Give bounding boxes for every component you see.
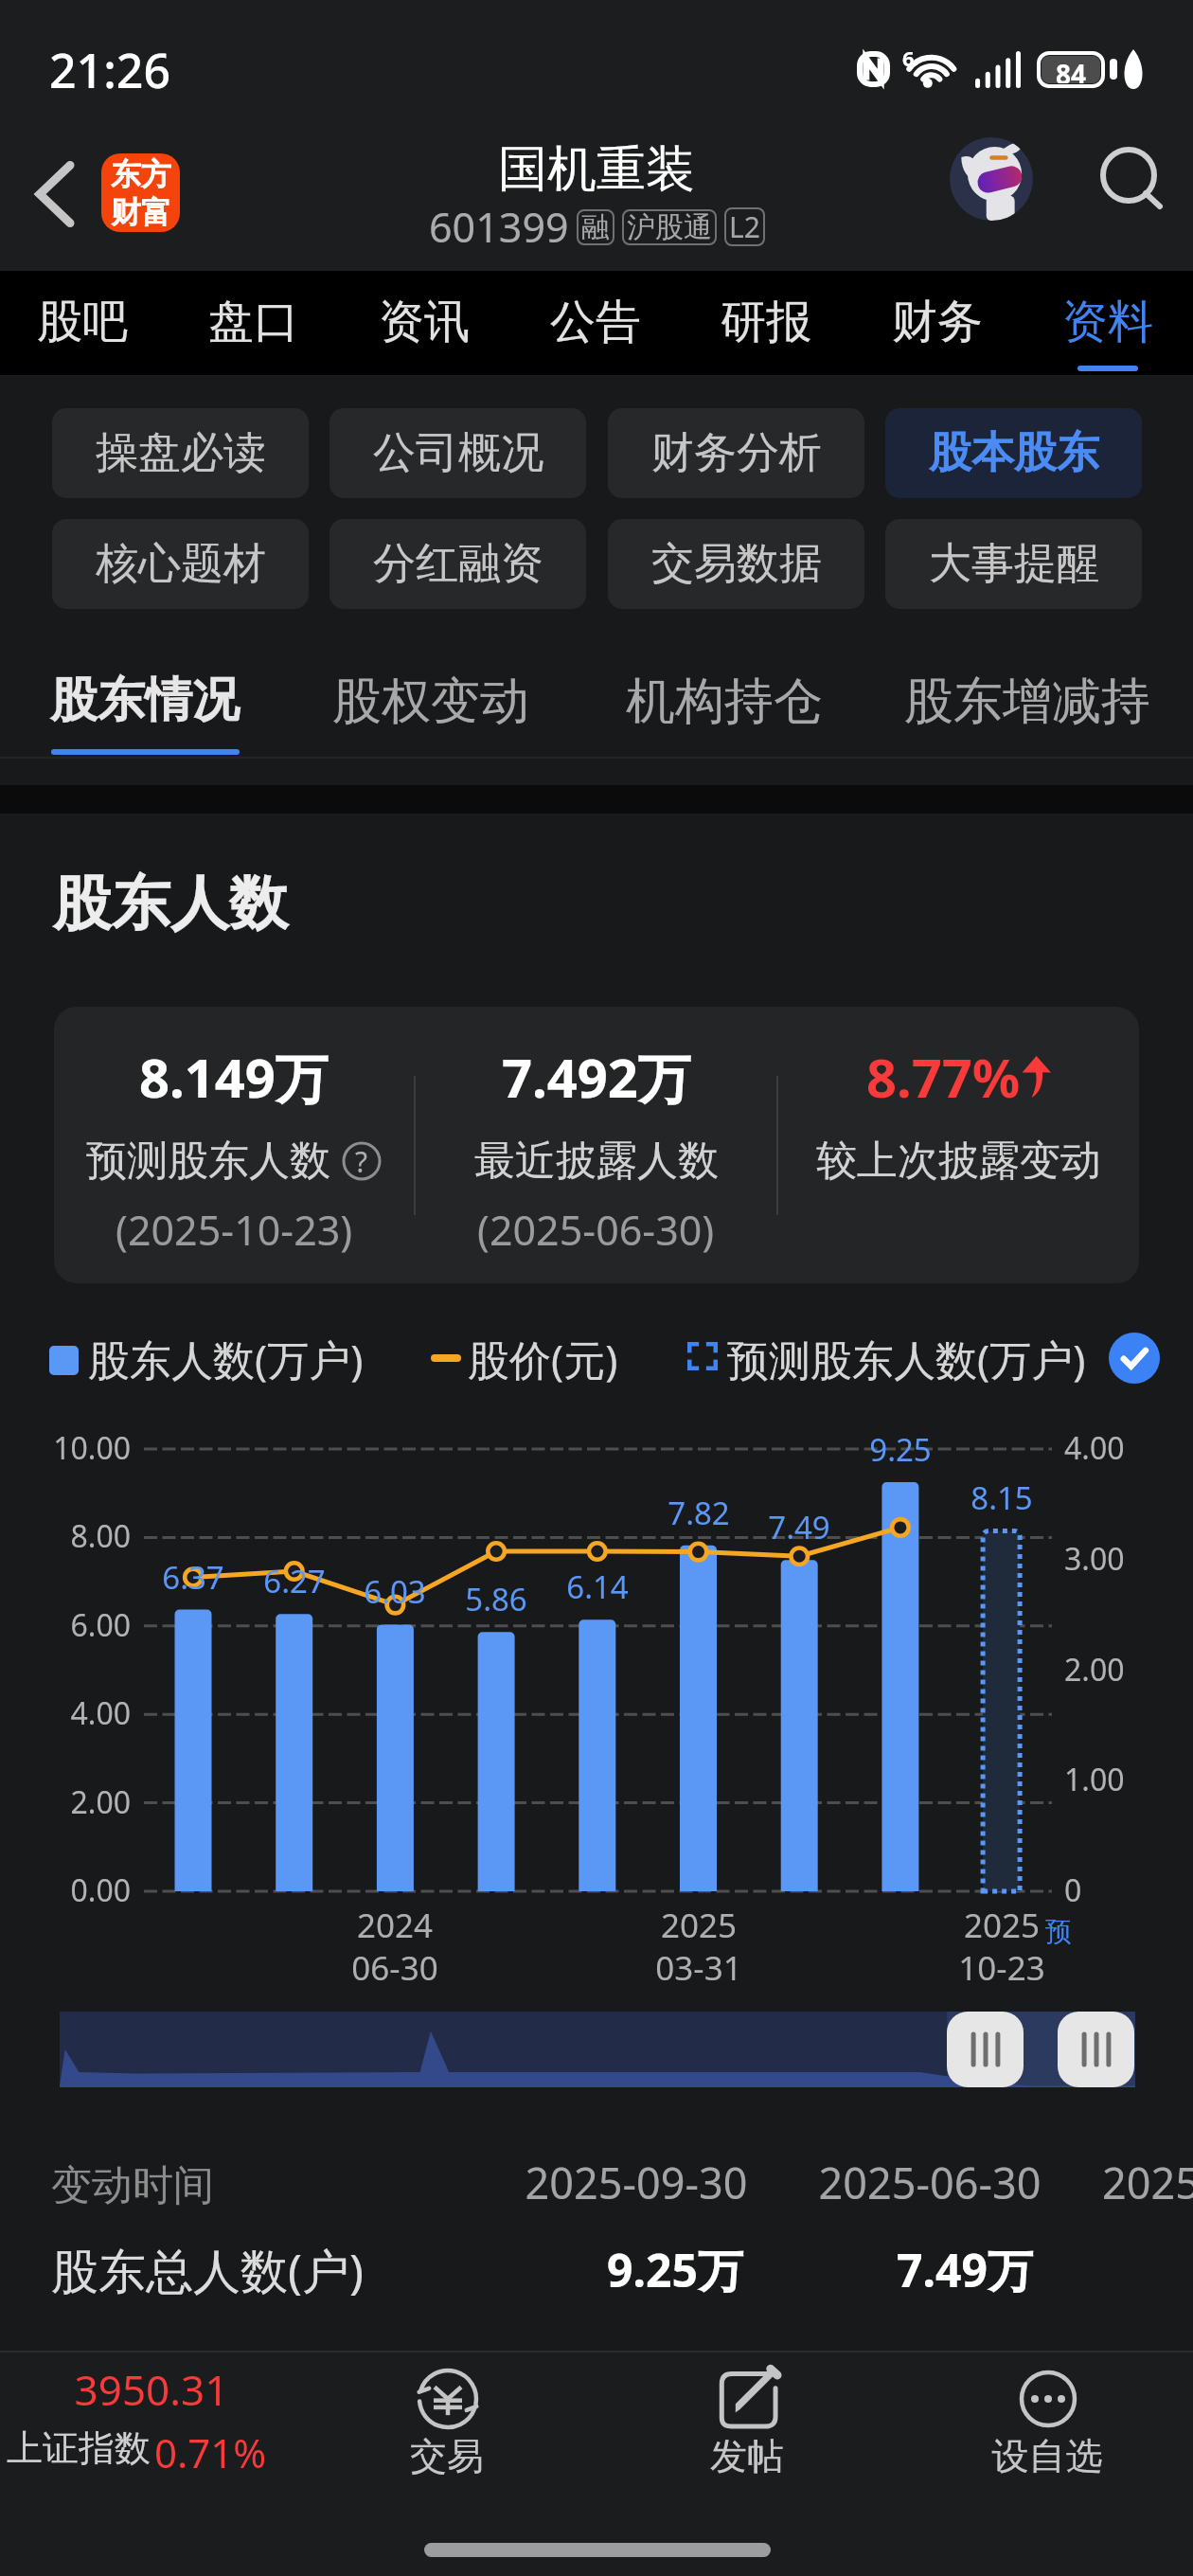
button[interactable]: 股本股东 bbox=[885, 408, 1142, 498]
staticText: 7.49 bbox=[742, 1506, 856, 1548]
button[interactable] bbox=[0, 271, 166, 375]
staticText: 8.15 bbox=[945, 1476, 1059, 1519]
staticText: 6.37 bbox=[136, 1556, 250, 1599]
staticText: 股本股东 bbox=[929, 426, 1099, 480]
staticText: 预测股东人数 bbox=[86, 1136, 330, 1187]
staticText: 核心题材 bbox=[96, 537, 266, 591]
staticText: 4.00 bbox=[27, 1692, 131, 1734]
staticText: 21:26 bbox=[49, 38, 170, 102]
staticText: 东方 bbox=[111, 155, 171, 193]
staticText: 7.49万 bbox=[851, 2239, 1078, 2301]
button[interactable] bbox=[341, 271, 507, 375]
staticText: 股东情况 bbox=[50, 671, 240, 730]
button[interactable]: 公司概况 bbox=[329, 408, 586, 498]
staticText: 2025 bbox=[907, 1903, 1096, 1948]
staticText: 财务分析 bbox=[651, 426, 822, 480]
staticText: 2.00 bbox=[1064, 1649, 1125, 1690]
button[interactable]: 3950.31 bbox=[0, 2351, 295, 2502]
button[interactable]: Search bbox=[1087, 133, 1172, 218]
button[interactable]: 7.492万 bbox=[416, 1007, 776, 1283]
button[interactable]: 8.77% bbox=[778, 1007, 1139, 1283]
button[interactable]: 大事提醒 bbox=[885, 519, 1142, 609]
staticText: 2024 bbox=[300, 1903, 490, 1948]
staticText: 6.00 bbox=[27, 1604, 131, 1646]
staticText: 大事提醒 bbox=[929, 537, 1099, 591]
button[interactable] bbox=[32, 625, 258, 758]
staticText: 研报 bbox=[681, 294, 851, 350]
staticText: 5.86 bbox=[439, 1578, 553, 1620]
button[interactable]: 交易数据 bbox=[608, 519, 864, 609]
staticText: 06-30 bbox=[300, 1945, 490, 1991]
button[interactable]: 财务分析 bbox=[608, 408, 864, 498]
staticText: (2025-06-30) bbox=[477, 1202, 715, 1258]
staticText: 交易 bbox=[362, 2433, 532, 2479]
button[interactable]: 设自选 bbox=[896, 2351, 1193, 2502]
staticText: 4.00 bbox=[1064, 1427, 1125, 1469]
button[interactable]: 操盘必读 bbox=[52, 408, 309, 498]
staticText: 1.00 bbox=[1064, 1759, 1125, 1800]
staticText: 资讯 bbox=[339, 294, 509, 350]
button[interactable] bbox=[608, 625, 828, 758]
staticText: 6.03 bbox=[338, 1570, 452, 1613]
staticText: 国机重装 bbox=[498, 138, 695, 201]
staticText: 沪股通 bbox=[627, 209, 712, 245]
button[interactable] bbox=[170, 271, 337, 375]
button[interactable]: 发帖 bbox=[596, 2351, 895, 2502]
staticText: 84 bbox=[1056, 56, 1087, 83]
staticText: 操盘必读 bbox=[96, 426, 266, 480]
button[interactable]: 交易 bbox=[295, 2351, 595, 2502]
staticText: 2.00 bbox=[27, 1781, 131, 1823]
button[interactable] bbox=[1024, 271, 1191, 375]
button[interactable] bbox=[886, 625, 1164, 758]
staticText: 上证指数 bbox=[7, 2425, 151, 2471]
staticText: 股吧 bbox=[0, 294, 168, 350]
staticText: 9.25万 bbox=[561, 2239, 789, 2301]
staticText: 设自选 bbox=[962, 2433, 1132, 2479]
button[interactable]: East Money home bbox=[101, 153, 180, 232]
staticText: 股权变动 bbox=[332, 671, 529, 733]
staticText: 3.00 bbox=[1064, 1538, 1125, 1580]
staticText: 03-31 bbox=[604, 1945, 793, 1991]
staticText: 7.82 bbox=[642, 1492, 756, 1534]
staticText: 2025-09-30 bbox=[523, 2154, 750, 2211]
button[interactable]: Range handle bbox=[1058, 2012, 1134, 2087]
button[interactable] bbox=[314, 625, 550, 758]
staticText: 变动时间 bbox=[51, 2160, 214, 2211]
staticText: 6.27 bbox=[238, 1560, 351, 1602]
staticText: 交易数据 bbox=[651, 537, 822, 591]
staticText: 资料 bbox=[1023, 294, 1193, 350]
staticText: 财富 bbox=[111, 193, 171, 231]
staticText: 分红融资 bbox=[373, 537, 543, 591]
staticText: 发帖 bbox=[662, 2433, 832, 2479]
staticText: 机构持仓 bbox=[626, 671, 823, 733]
staticText: 10.00 bbox=[27, 1427, 131, 1469]
button[interactable]: 分红融资 bbox=[329, 519, 586, 609]
staticText: 较上次披露变动 bbox=[816, 1136, 1101, 1187]
button[interactable]: Range handle bbox=[947, 2012, 1024, 2087]
button[interactable]: Profile bbox=[950, 137, 1033, 221]
button[interactable] bbox=[854, 271, 1021, 375]
staticText: 7.492万 bbox=[502, 1041, 691, 1113]
staticText: 股价(元) bbox=[468, 1331, 618, 1387]
staticText: 公告 bbox=[510, 294, 681, 350]
staticText: 10-23 bbox=[907, 1945, 1096, 1991]
staticText: 公司概况 bbox=[373, 426, 543, 480]
staticText: 8.149万 bbox=[139, 1041, 329, 1113]
staticText: 股东人数(万户) bbox=[88, 1331, 364, 1387]
staticText: 8.00 bbox=[27, 1515, 131, 1557]
button[interactable] bbox=[683, 271, 849, 375]
staticText: L2 bbox=[729, 207, 760, 246]
staticText: 0.71% bbox=[154, 2425, 267, 2479]
button[interactable] bbox=[512, 271, 679, 375]
staticText: 2025-06-30 bbox=[816, 2154, 1043, 2211]
button[interactable]: 核心题材 bbox=[52, 519, 309, 609]
staticText: 2025 bbox=[1102, 2154, 1193, 2211]
button[interactable]: 8.149万 bbox=[54, 1007, 414, 1283]
button[interactable]: Toggle forecast series bbox=[1109, 1333, 1160, 1384]
button[interactable]: Back bbox=[17, 156, 93, 232]
staticText: 0.00 bbox=[27, 1869, 131, 1911]
staticText: 股东人数 bbox=[53, 867, 288, 940]
staticText: 2025 bbox=[604, 1903, 793, 1948]
staticText: 601399 bbox=[429, 199, 569, 255]
staticText: 融 bbox=[581, 209, 610, 245]
